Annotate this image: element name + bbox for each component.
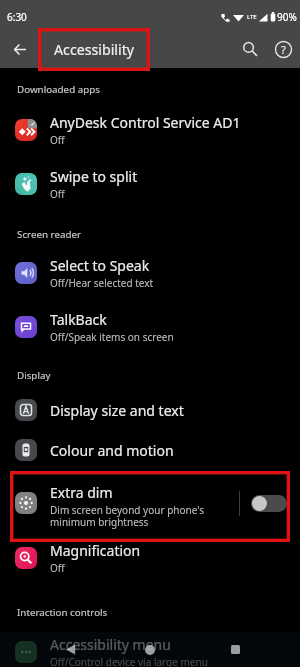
staticText: Off/Hear selected text	[50, 276, 154, 290]
staticText: Accessibility	[54, 40, 135, 59]
staticText: Off/Control device via large menu	[50, 655, 208, 667]
button[interactable]: Colour and motion	[0, 430, 300, 470]
button[interactable]: Magnification	[0, 531, 300, 585]
button[interactable]: Swipe to split	[0, 157, 300, 211]
staticText: Swipe to split	[50, 167, 138, 186]
staticText: Colour and motion	[50, 441, 174, 460]
staticText: Select to Speak	[50, 256, 150, 275]
staticText: Interaction controls	[17, 606, 108, 619]
staticText: Screen reader	[17, 228, 82, 241]
staticText: Dim screen beyond your phone's minimum b…	[50, 503, 204, 529]
staticText: Off	[50, 133, 65, 147]
staticText: Extra dim	[50, 483, 113, 502]
staticText: Off/Speak items on screen	[50, 330, 174, 344]
staticText: Accessibility menu	[50, 635, 171, 654]
button[interactable]: TalkBack	[0, 300, 300, 354]
staticText: Display size and text	[50, 401, 184, 420]
staticText: AnyDesk Control Service AD1	[50, 113, 241, 132]
staticText: ?	[281, 42, 286, 57]
staticText: Downloaded apps	[17, 83, 100, 96]
button[interactable]: Help	[266, 32, 300, 66]
button[interactable]: Accessibility menu	[0, 625, 300, 667]
staticText: 6:30	[7, 10, 27, 24]
staticText: 90%	[277, 10, 297, 24]
button[interactable]: AnyDesk Control Service AD1	[0, 103, 300, 157]
button[interactable]: Extra dim	[15, 472, 239, 534]
staticText: LTE	[247, 13, 257, 21]
staticText: Magnification	[50, 541, 141, 560]
button[interactable]: Select to Speak	[0, 246, 300, 300]
button[interactable]: Back	[53, 632, 88, 667]
staticText: Display	[17, 369, 51, 382]
button[interactable]: Recents	[218, 632, 253, 667]
button[interactable]: Back	[3, 32, 37, 66]
staticText: TalkBack	[50, 310, 107, 329]
button[interactable]: Display size and text	[0, 390, 300, 430]
staticText: Off	[50, 187, 65, 201]
button[interactable]: Extra dim toggle	[251, 495, 287, 512]
button[interactable]: Home	[132, 632, 167, 667]
button[interactable]: Search	[233, 32, 267, 66]
staticText: Off	[50, 561, 65, 575]
